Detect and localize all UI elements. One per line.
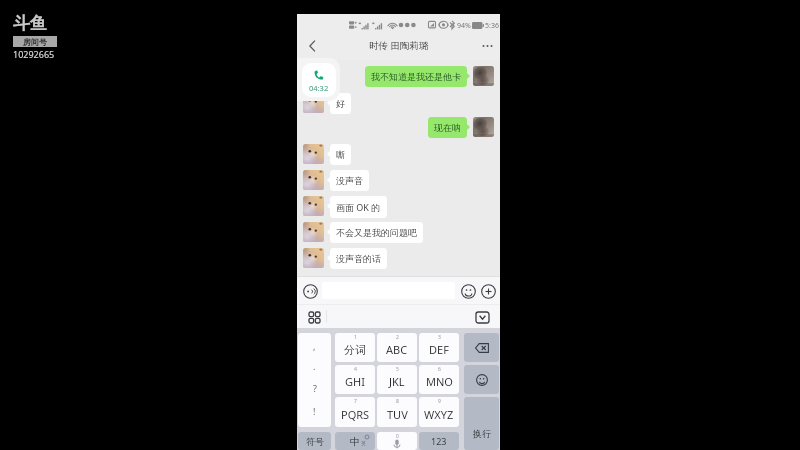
staticText: ABC [386,342,408,357]
staticText: 不会又是我的问题吧 [336,227,417,238]
staticText: 7 [354,398,357,405]
staticText: 10292665 [13,48,55,60]
staticText: PQRS [341,407,370,422]
button[interactable]: 2 [377,333,417,362]
staticText: 1 [354,334,357,341]
button[interactable]: Back [299,31,325,60]
button[interactable]: 6 [419,365,459,394]
staticText: 0 [396,433,399,440]
staticText: 好 [336,98,345,109]
staticText: 4 [354,366,357,373]
button[interactable]: 1 [335,333,375,362]
button[interactable]: Profile picture [303,170,324,190]
button[interactable]: 画面 OK 的 [330,196,387,218]
button[interactable]: More options [474,31,500,60]
button[interactable]: 没声音 [330,170,369,191]
staticText: WXYZ [424,407,454,422]
staticText: 现在呐 [434,122,461,133]
button[interactable]: Profile picture [303,222,324,242]
staticText: TUV [387,407,408,422]
button[interactable]: More functions [480,283,496,299]
button[interactable]: 不会又是我的问题吧 [330,222,423,243]
staticText: 房间号 [23,37,47,47]
button[interactable]: Hide keyboard [473,308,491,326]
staticText: MNO [426,374,453,389]
button[interactable]: 5 [377,365,417,394]
button[interactable]: Profile picture [303,248,324,268]
button[interactable]: 好 [330,93,351,114]
staticText: 6 [438,366,441,373]
button[interactable]: 4 [335,365,375,394]
button[interactable]: 换行 [464,397,499,450]
button[interactable]: 9 [419,397,459,427]
staticText: 换行 [473,428,491,439]
button[interactable]: 8 [377,397,417,427]
staticText: , [313,340,316,352]
staticText: DEF [429,342,449,357]
staticText: GHI [345,374,365,389]
staticText: 我不知道是我还是他卡 [371,71,461,82]
button[interactable]: , [298,333,331,427]
staticText: 分词 [344,343,366,357]
button[interactable]: Voice input [377,432,417,450]
staticText: JKL [389,374,405,389]
button[interactable]: 我不知道是我还是他卡 [365,66,467,87]
button[interactable]: Profile picture [303,144,324,164]
staticText: 123 [431,435,447,447]
button[interactable]: Input method settings [306,309,322,325]
staticText: 94% [457,21,471,31]
staticText: 英 [361,440,366,446]
button[interactable]: Profile picture [473,66,494,86]
button[interactable]: 123 [419,432,459,450]
staticText: 中 [350,435,360,448]
staticText: 画面 OK 的 [336,201,381,213]
button[interactable]: 嘶 [330,144,351,165]
staticText: 5 [396,366,399,373]
staticText: 8 [396,398,399,405]
staticText: 04:32 [309,83,329,93]
staticText: ? [313,382,317,394]
button[interactable]: Voice message [302,283,318,299]
staticText: 9 [438,398,441,405]
staticText: 时传 田陶莉璐 [369,39,429,52]
staticText: . [313,360,316,372]
button[interactable]: Ongoing voice call 04:32 [302,63,336,97]
button[interactable]: Profile picture [303,93,324,113]
button[interactable]: 符号 [298,432,331,450]
button[interactable]: 7 [335,397,375,427]
staticText: 嘶 [336,149,345,160]
button[interactable]: 3 [419,333,459,362]
button[interactable]: Emoji keyboard [464,365,499,394]
button[interactable]: Profile picture [303,196,324,216]
staticText: 5:36 [485,21,499,31]
staticText: 3 [438,334,441,341]
button[interactable]: 没声音的话 [330,248,387,269]
button[interactable]: Backspace [464,333,499,362]
staticText: 没声音的话 [336,253,381,264]
staticText: 2 [396,334,399,341]
staticText: ! [313,405,316,417]
button[interactable]: Profile picture [473,117,494,137]
staticText: 符号 [306,436,324,447]
button[interactable]: 中 [335,432,375,450]
staticText: 没声音 [336,175,363,186]
button[interactable]: 现在呐 [428,117,467,138]
staticText: 斗鱼 [13,13,47,34]
button[interactable]: Emoji [460,283,476,299]
